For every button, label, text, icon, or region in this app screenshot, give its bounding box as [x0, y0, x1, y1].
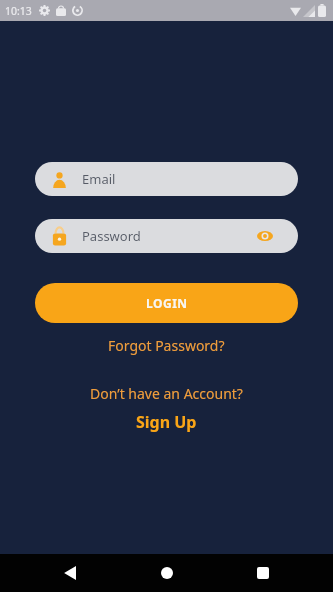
- staticText: Password: [82, 227, 141, 245]
- staticText: Don’t have an Account?: [90, 384, 243, 403]
- button[interactable]: Forgot Password?: [104, 332, 229, 359]
- button[interactable]: [153, 559, 181, 587]
- button[interactable]: [249, 559, 277, 587]
- button[interactable]: LOGIN: [35, 283, 298, 323]
- button[interactable]: Password: [35, 219, 298, 253]
- staticText: Forgot Password?: [108, 336, 225, 355]
- button[interactable]: Sign Up: [132, 407, 201, 437]
- staticText: Sign Up: [136, 411, 197, 433]
- button[interactable]: [55, 559, 83, 587]
- button[interactable]: Email: [35, 162, 298, 196]
- staticText: 10:13: [5, 4, 32, 18]
- staticText: LOGIN: [146, 295, 188, 311]
- staticText: Email: [82, 170, 116, 188]
